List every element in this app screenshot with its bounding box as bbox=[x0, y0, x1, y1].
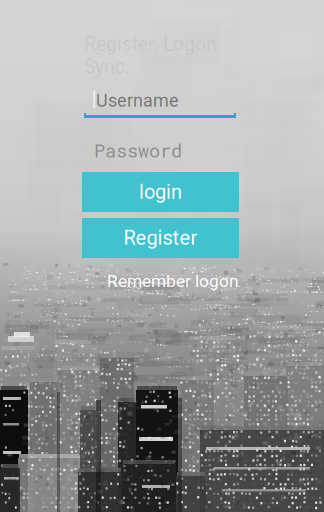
button[interactable]: Remember logon bbox=[99, 271, 239, 288]
staticText: Register. Logon. Sync. bbox=[84, 33, 222, 78]
staticText: Password bbox=[94, 138, 182, 156]
button[interactable]: login bbox=[82, 172, 239, 212]
button[interactable]: Register bbox=[82, 218, 239, 258]
staticText: Remember logon bbox=[107, 271, 239, 288]
staticText: Register bbox=[123, 226, 197, 250]
staticText: Username bbox=[96, 90, 179, 108]
staticText: login bbox=[139, 180, 182, 204]
